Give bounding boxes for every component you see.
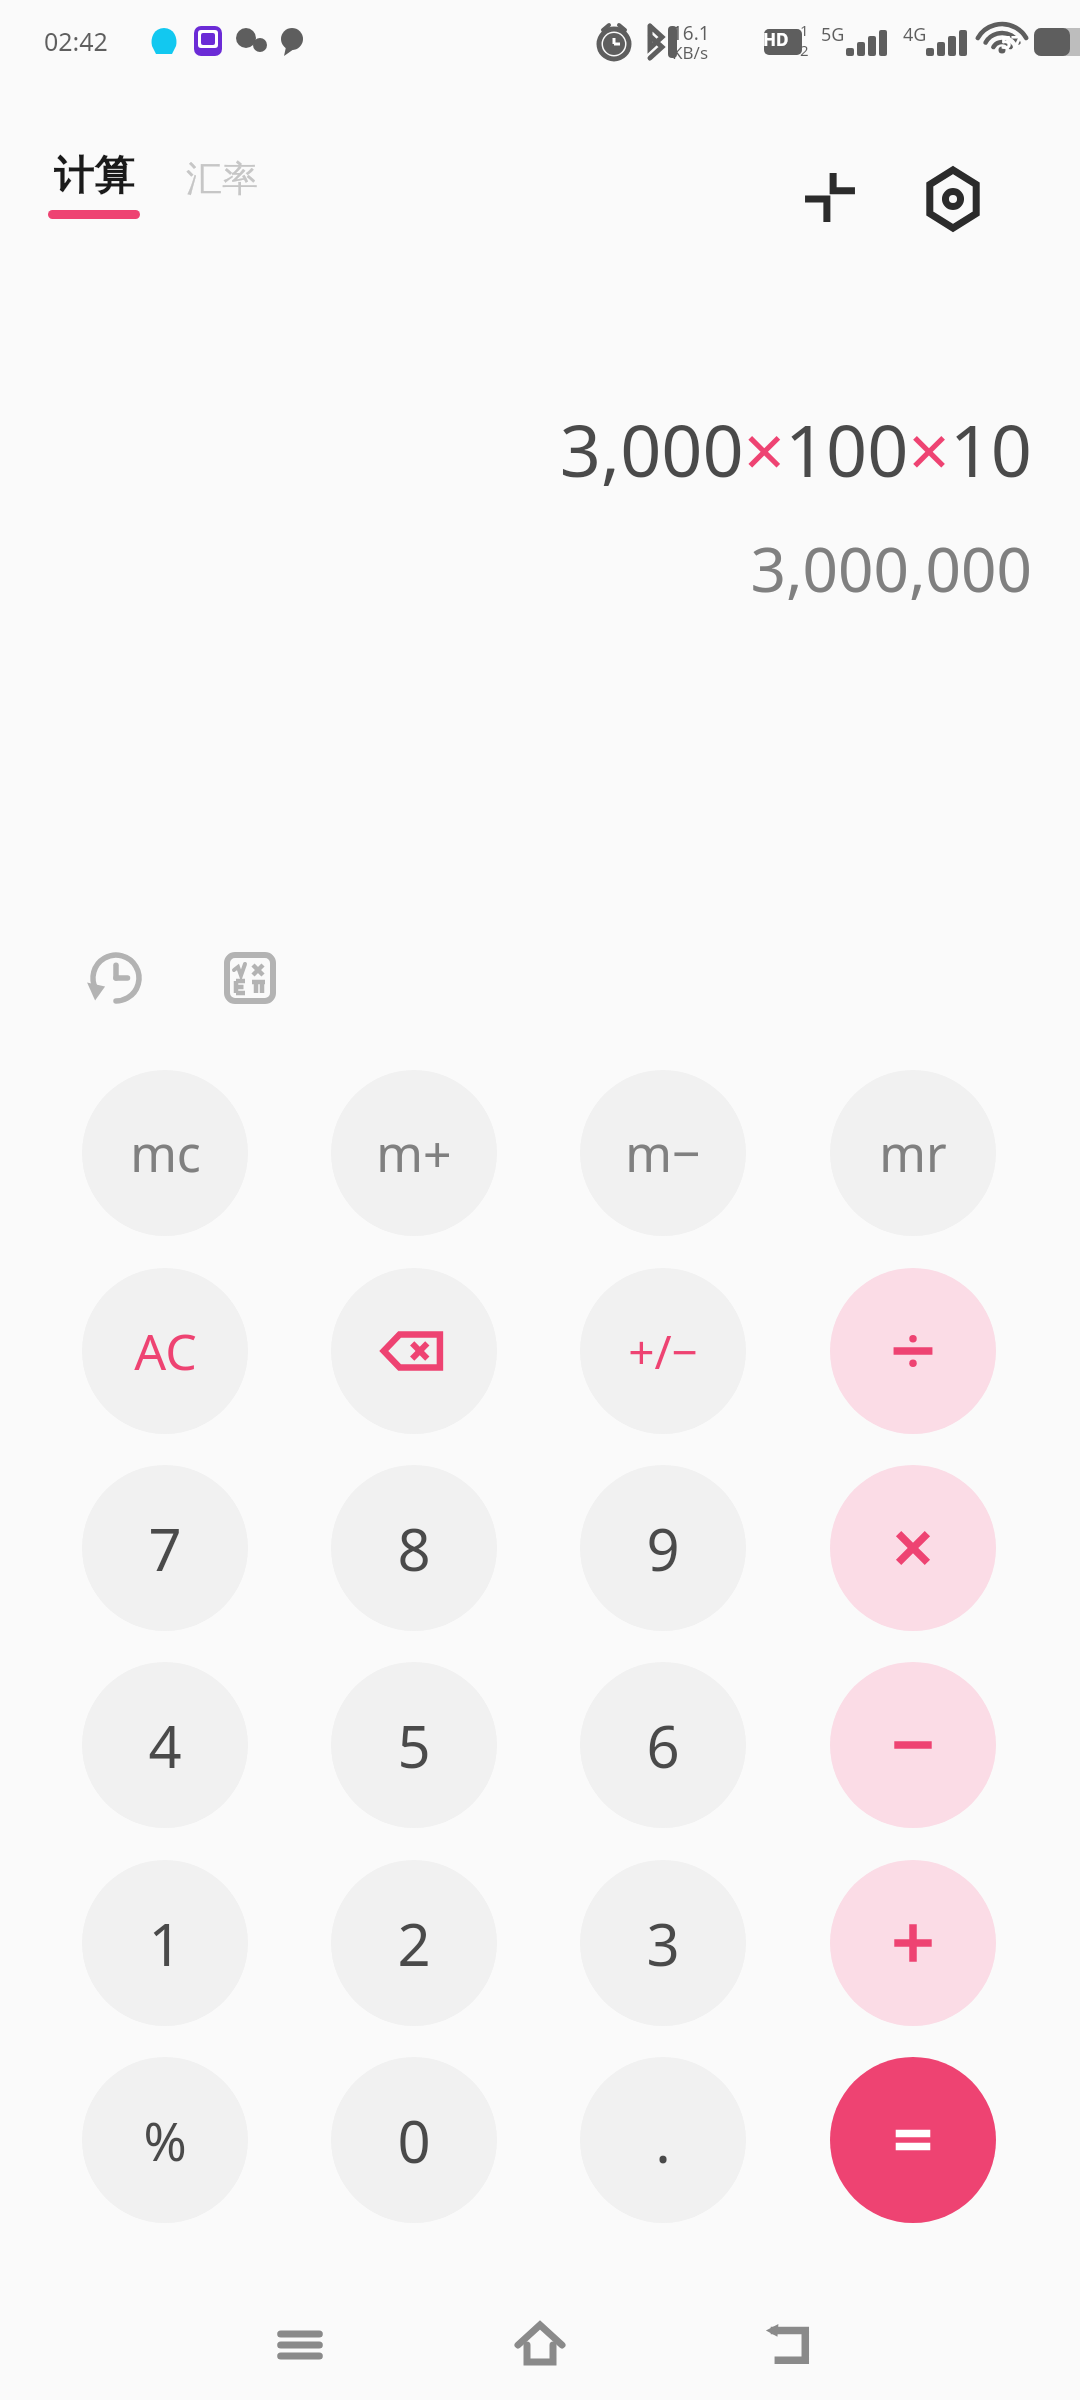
staticText: 02:42 (44, 24, 108, 58)
button[interactable]: 8 (331, 1465, 497, 1631)
button[interactable]: m− (580, 1070, 746, 1236)
button[interactable]: Scientific (212, 940, 288, 1016)
button[interactable]: +/− (580, 1268, 746, 1434)
staticText: 3,000×100×10 (559, 400, 1032, 498)
button[interactable]: 1 (82, 1860, 248, 2026)
staticText: m+ (376, 1119, 452, 1187)
button[interactable]: Settings (910, 156, 996, 242)
staticText: mr (879, 1119, 947, 1187)
button[interactable]: History (78, 940, 154, 1016)
staticText: 2 (397, 1904, 431, 1983)
staticText: 2 (800, 40, 809, 60)
staticText: 0 (397, 2101, 431, 2180)
staticText: 16.1 (672, 20, 710, 46)
button[interactable]: 4 (82, 1662, 248, 1828)
button[interactable]: 3 (580, 1860, 746, 2026)
button[interactable]: m+ (331, 1070, 497, 1236)
staticText: 1 (800, 20, 809, 40)
staticText: 5 (397, 1706, 431, 1785)
button[interactable]: 7 (82, 1465, 248, 1631)
button[interactable]: . (580, 2057, 746, 2223)
button[interactable]: Collapse (790, 158, 870, 238)
staticText: % (143, 2105, 187, 2176)
staticText: . (655, 2101, 671, 2180)
button[interactable]: mr (830, 1070, 996, 1236)
button[interactable]: Delete (331, 1268, 497, 1434)
staticText: 3,000,000 (750, 526, 1032, 610)
button[interactable]: Add (830, 1860, 996, 2026)
button[interactable]: % (82, 2057, 248, 2223)
staticText: 8 (397, 1509, 431, 1588)
staticText: 9 (646, 1509, 680, 1588)
button[interactable]: Subtract (830, 1662, 996, 1828)
staticText: AC (134, 1317, 197, 1385)
button[interactable]: Multiply (830, 1465, 996, 1631)
staticText: 4 (148, 1706, 182, 1785)
button[interactable]: 6 (580, 1662, 746, 1828)
staticText: m− (625, 1119, 701, 1187)
button[interactable]: Recents (255, 2300, 345, 2390)
button[interactable]: 9 (580, 1465, 746, 1631)
staticText: HD (763, 28, 789, 51)
staticText: 7 (148, 1509, 182, 1588)
staticText: 5G (821, 22, 845, 47)
button[interactable]: 0 (331, 2057, 497, 2223)
staticText: 汇率 (186, 156, 258, 201)
staticText: 6 (646, 1706, 680, 1785)
button[interactable]: Equals (830, 2057, 996, 2223)
button[interactable]: 汇率 (178, 152, 266, 205)
button[interactable]: AC (82, 1268, 248, 1434)
staticText: 57 (1001, 30, 1022, 55)
staticText: KB/s (672, 41, 709, 64)
button[interactable]: 2 (331, 1860, 497, 2026)
button[interactable]: Home (494, 2298, 586, 2390)
staticText: +/− (628, 1320, 698, 1383)
staticText: 1 (148, 1904, 182, 1983)
button[interactable]: 5 (331, 1662, 497, 1828)
button[interactable]: Back (743, 2300, 833, 2390)
button[interactable]: 计算 (44, 150, 144, 219)
staticText: 计算 (54, 150, 134, 200)
staticText: 4G (903, 22, 927, 47)
button[interactable]: Divide (830, 1268, 996, 1434)
button[interactable]: mc (82, 1070, 248, 1236)
staticText: 3 (646, 1904, 680, 1983)
staticText: mc (130, 1119, 201, 1187)
